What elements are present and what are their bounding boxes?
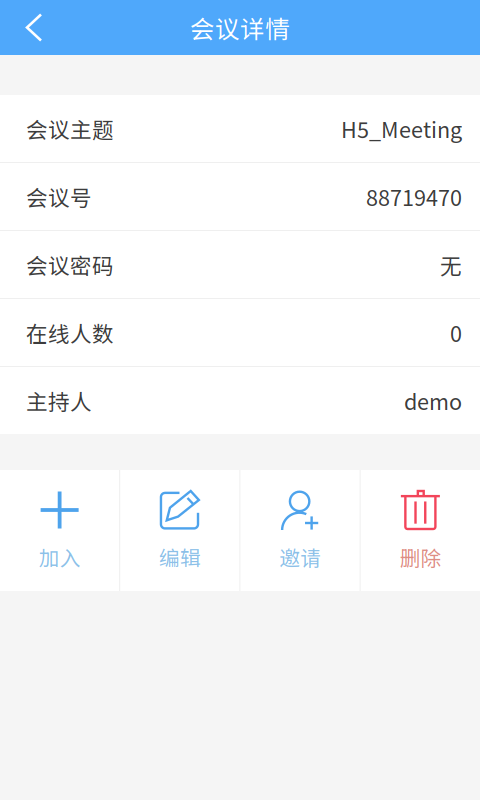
button[interactable]: Back xyxy=(0,0,59,54)
staticText: 88719470 xyxy=(366,181,462,212)
staticText: H5_Meeting xyxy=(341,113,462,144)
staticText: 加入 xyxy=(39,542,81,572)
staticText: 删除 xyxy=(399,542,441,572)
button[interactable]: 加入 xyxy=(0,470,119,591)
staticText: 无 xyxy=(440,249,462,280)
button[interactable]: 邀请 xyxy=(240,470,360,591)
staticText: 主持人 xyxy=(26,385,92,416)
button[interactable]: 编辑 xyxy=(120,470,239,591)
staticText: 会议详情 xyxy=(190,10,290,45)
staticText: 会议号 xyxy=(26,181,92,212)
staticText: 邀请 xyxy=(279,542,321,572)
staticText: demo xyxy=(404,385,462,416)
staticText: 0 xyxy=(450,317,462,348)
staticText: 会议主题 xyxy=(26,113,114,144)
staticText: 在线人数 xyxy=(26,317,114,348)
button[interactable]: 删除 xyxy=(361,470,480,591)
staticText: 会议密码 xyxy=(26,249,114,280)
staticText: 编辑 xyxy=(159,542,201,572)
